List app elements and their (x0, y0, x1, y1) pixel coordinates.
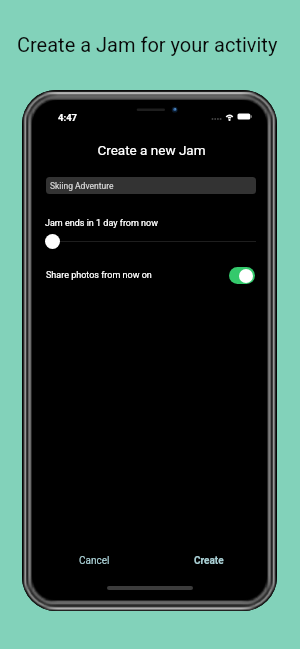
staticText: Cancel (79, 555, 110, 567)
staticText: Create (194, 555, 224, 567)
button[interactable]: Create (188, 550, 230, 572)
staticText: 4:47 (58, 112, 78, 123)
staticText: Create a Jam for your activity (17, 33, 278, 56)
button[interactable]: Cancel (73, 550, 116, 572)
button[interactable]: Skiing Adventure (46, 177, 256, 194)
button[interactable]: Share photos from now on (46, 265, 255, 286)
button[interactable] (45, 233, 255, 249)
staticText: Jam ends in 1 day from now (45, 218, 158, 229)
staticText: Create a new Jam (34, 142, 267, 158)
staticText: Skiing Adventure (50, 181, 114, 191)
staticText: Share photos from now on (46, 270, 152, 281)
